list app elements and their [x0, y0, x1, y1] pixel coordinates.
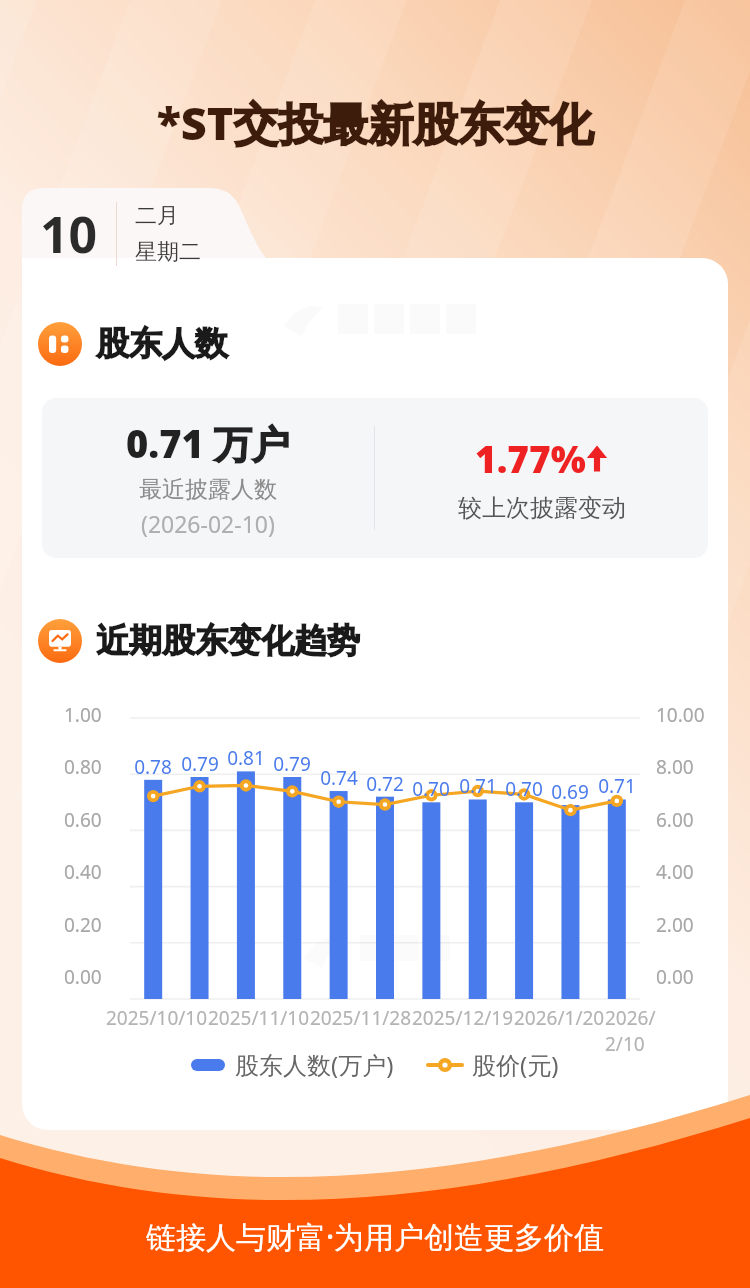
staticText: 0.71: [595, 773, 639, 799]
staticText: 二月: [135, 202, 179, 230]
button[interactable]: 0.71 万户: [42, 398, 708, 558]
staticText: 0.60: [64, 807, 102, 833]
staticText: 0.70: [409, 776, 453, 802]
staticText: 1.00: [64, 702, 102, 728]
staticText: 股价(元): [472, 1048, 559, 1081]
staticText: 2025/11/28: [310, 1005, 412, 1031]
button[interactable]: 股价(元): [428, 1048, 559, 1081]
staticText: 2026/2/10: [605, 1005, 662, 1057]
staticText: 股东人数(万户): [235, 1048, 394, 1081]
staticText: 星期二: [135, 238, 201, 266]
staticText: 0.79: [270, 751, 314, 777]
staticText: 最近披露人数: [139, 475, 277, 504]
button[interactable]: 股东人数: [38, 318, 228, 370]
other: 股东人数: [38, 322, 82, 366]
staticText: 1.77%: [475, 433, 586, 483]
staticText: 股东人数: [96, 323, 228, 365]
staticText: 2026/1/20: [514, 1005, 605, 1031]
staticText: 0.71: [456, 773, 500, 799]
staticText: 0.81: [224, 745, 268, 771]
staticText: 4.00: [656, 859, 694, 885]
staticText: 0.71 万户: [126, 417, 290, 469]
staticText: 0.70: [502, 776, 546, 802]
staticText: 0.72: [363, 771, 407, 797]
staticText: 6.00: [656, 807, 694, 833]
staticText: 0.78: [131, 754, 175, 780]
staticText: *ST交投最新股东变化: [0, 92, 750, 153]
staticText: 0.00: [656, 964, 694, 990]
staticText: 2025/10/10: [106, 1005, 208, 1031]
staticText: 0.00: [64, 964, 102, 990]
staticText: (2026-02-10): [141, 508, 275, 539]
staticText: 2025/11/10: [208, 1005, 310, 1031]
staticText: 8.00: [656, 754, 694, 780]
staticText: 2025/12/19: [412, 1005, 514, 1031]
staticText: 链接人与财富·为用户创造更多价值: [0, 1216, 750, 1257]
button[interactable]: 近期股东变化趋势: [38, 615, 360, 667]
staticText: 10: [40, 200, 98, 268]
staticText: 0.20: [64, 912, 102, 938]
staticText: 10.00: [656, 702, 705, 728]
other: 近期股东变化趋势: [38, 619, 82, 663]
staticText: 0.74: [317, 765, 361, 791]
staticText: 2.00: [656, 912, 694, 938]
button[interactable]: 股东人数(万户): [191, 1048, 394, 1081]
staticText: 近期股东变化趋势: [96, 620, 360, 662]
staticText: 较上次披露变动: [458, 493, 626, 523]
staticText: 0.79: [178, 751, 222, 777]
staticText: 0.69: [548, 779, 592, 805]
staticText: 0.80: [64, 754, 102, 780]
staticText: 0.40: [64, 859, 102, 885]
